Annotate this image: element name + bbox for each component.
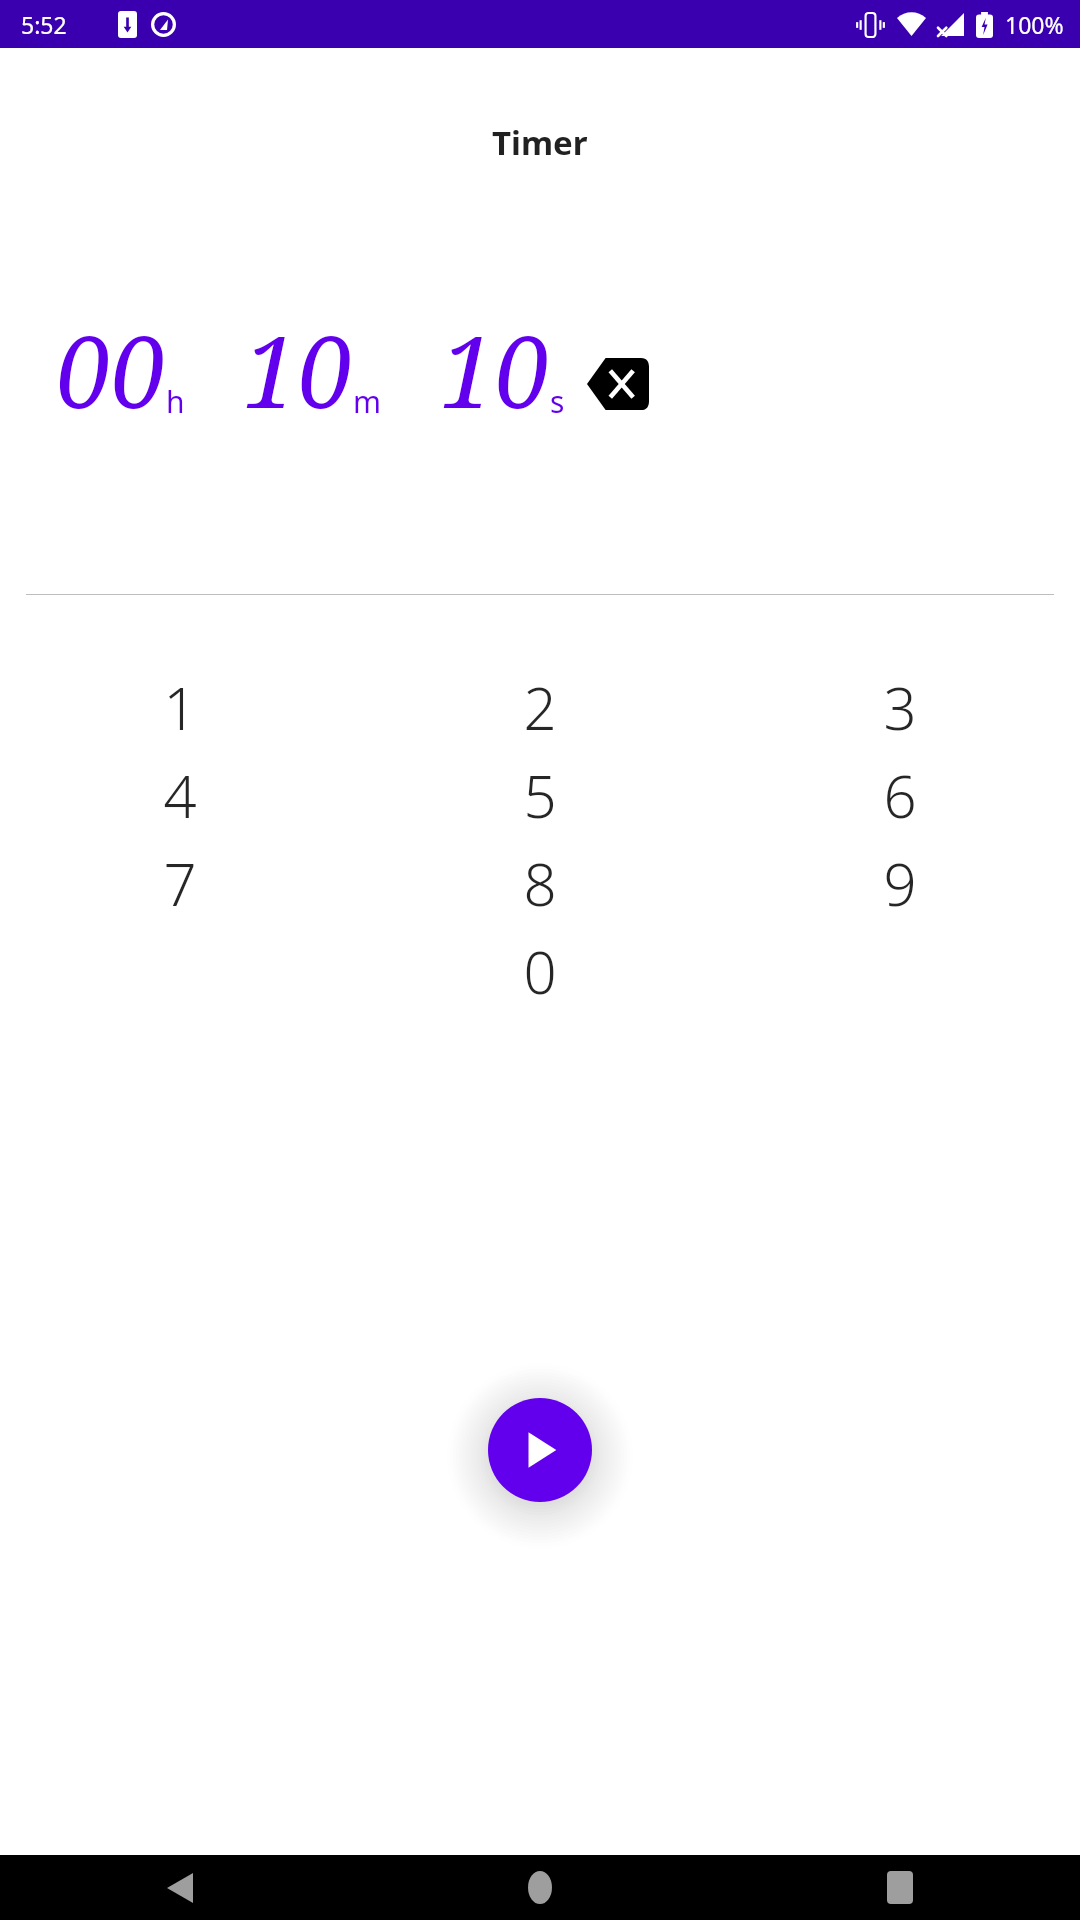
staticText: 6 <box>883 756 917 835</box>
button[interactable]: Backspace <box>587 358 649 410</box>
staticText: 7 <box>163 844 197 923</box>
button[interactable]: 1 <box>126 663 234 751</box>
staticText: 3 <box>883 668 917 747</box>
staticText: 0 <box>523 932 557 1011</box>
button[interactable]: 7 <box>126 839 234 927</box>
button[interactable]: 10 <box>440 303 550 436</box>
button[interactable]: Back <box>0 1855 360 1920</box>
staticText: 8 <box>523 844 557 923</box>
button[interactable]: 10 <box>243 303 353 436</box>
button[interactable]: 3 <box>846 663 954 751</box>
button[interactable]: 5 <box>486 751 594 839</box>
staticText: s <box>550 381 565 422</box>
staticText: 100% <box>1005 9 1064 40</box>
staticText: 1 <box>163 668 197 747</box>
staticText: 5:52 <box>21 9 67 40</box>
staticText: Timer <box>492 120 588 165</box>
button[interactable]: 00 <box>56 303 166 436</box>
button[interactable]: 6 <box>846 751 954 839</box>
button[interactable]: 2 <box>486 663 594 751</box>
staticText: h <box>166 381 185 422</box>
button[interactable]: 0 <box>486 927 594 1015</box>
button[interactable]: Recents <box>720 1855 1080 1920</box>
staticText: 2 <box>523 668 557 747</box>
button[interactable]: Home <box>360 1855 720 1920</box>
staticText: 5 <box>523 756 557 835</box>
button[interactable]: 9 <box>846 839 954 927</box>
staticText: 4 <box>163 756 197 835</box>
button[interactable]: Start timer <box>488 1398 592 1502</box>
button[interactable]: 8 <box>486 839 594 927</box>
staticText: m <box>353 381 382 422</box>
button[interactable]: 4 <box>126 751 234 839</box>
staticText: 9 <box>883 844 917 923</box>
